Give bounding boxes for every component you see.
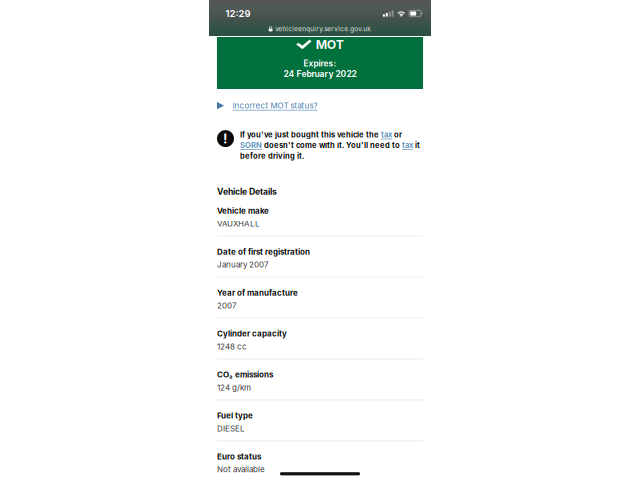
staticText: ! xyxy=(223,130,228,147)
staticText: DIESEL xyxy=(217,424,245,433)
staticText: Not available xyxy=(217,465,265,474)
staticText: SORN xyxy=(240,141,262,150)
staticText: tax xyxy=(381,130,392,139)
staticText: 12:29 xyxy=(225,8,250,19)
staticText: tax xyxy=(402,141,413,150)
staticText: Fuel type xyxy=(217,411,253,420)
staticText: 1248 cc xyxy=(217,342,247,351)
staticText: Incorrect MOT status? xyxy=(232,101,317,110)
button[interactable]: Incorrect MOT status? xyxy=(217,99,423,113)
staticText: MOT xyxy=(316,37,344,52)
staticText: vehicleenquiry.service.gov.uk xyxy=(275,25,371,33)
staticText: Date of first registration xyxy=(217,247,310,257)
staticText: January 2007 xyxy=(217,260,269,269)
staticText: VAUXHALL xyxy=(217,219,260,229)
staticText: Cylinder capacity xyxy=(217,329,287,339)
staticText: CO₂ emissions xyxy=(217,370,273,379)
staticText: Expires: xyxy=(303,58,336,68)
staticText: 24 February 2022 xyxy=(283,69,356,79)
staticText: it xyxy=(413,141,420,150)
staticText: doesn't come with it. You'll need to xyxy=(262,141,402,150)
staticText: Vehicle make xyxy=(217,206,269,216)
staticText: before driving it. xyxy=(240,151,305,160)
staticText: If you've just bought this vehicle the xyxy=(240,130,381,139)
staticText: 2007 xyxy=(217,301,237,310)
staticText: Year of manufacture xyxy=(217,288,298,298)
staticText: Euro status xyxy=(217,452,261,461)
staticText: or xyxy=(392,130,402,139)
staticText: 124 g/km xyxy=(217,383,251,392)
staticText: Vehicle Details xyxy=(217,186,277,197)
